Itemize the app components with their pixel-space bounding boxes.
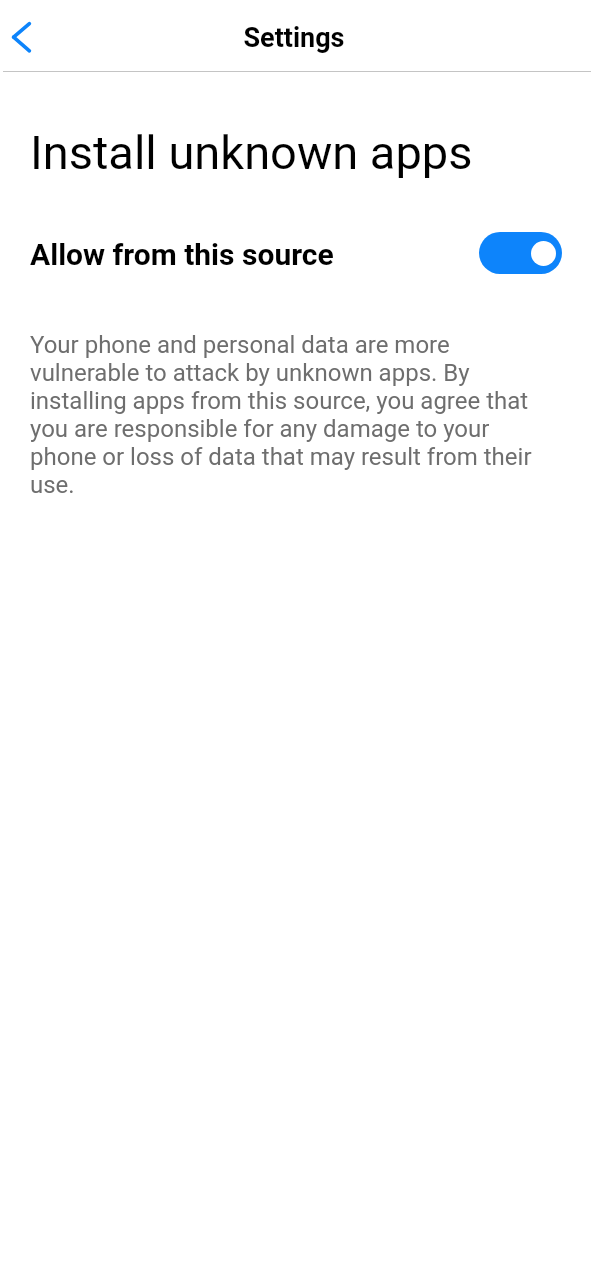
button[interactable]: Back	[0, 8, 44, 64]
staticText: Settings	[243, 22, 345, 54]
staticText: Install unknown apps	[30, 125, 473, 180]
staticText: Your phone and personal data are more vu…	[30, 331, 541, 499]
staticText: Allow from this source	[30, 237, 334, 272]
button[interactable]: Allow from this source	[0, 222, 591, 284]
